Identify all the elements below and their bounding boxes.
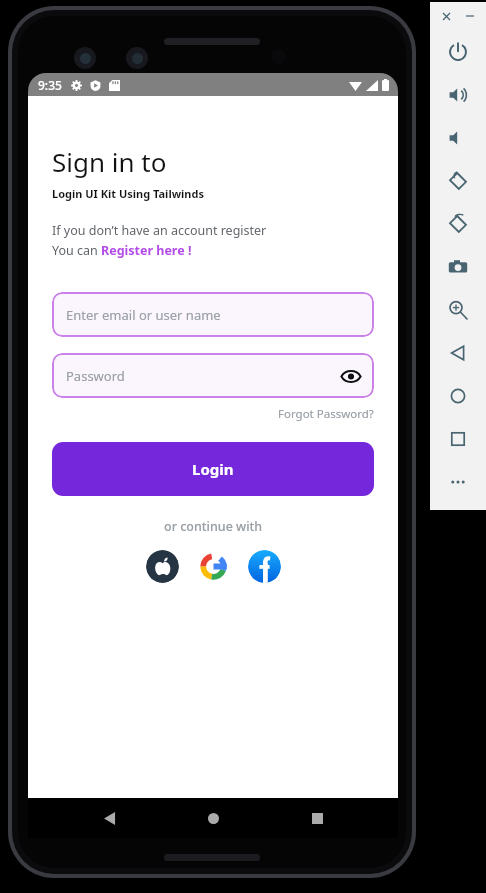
button[interactable]: Recents: [295, 798, 339, 838]
button[interactable]: Power: [430, 30, 486, 73]
button[interactable]: Login: [52, 442, 374, 496]
staticText: You can Register here !: [52, 242, 192, 259]
button[interactable]: You can Register here !: [52, 242, 192, 259]
button[interactable]: Password: [52, 353, 374, 398]
staticText: Login UI Kit Using Tailwinds: [52, 186, 204, 201]
button[interactable]: Zoom: [430, 288, 486, 331]
button[interactable]: Close: [438, 8, 454, 24]
staticText: If you don’t have an account register: [52, 222, 267, 239]
button[interactable]: Forgot Password?: [278, 406, 374, 422]
button[interactable]: Enter email or user name: [52, 292, 374, 337]
staticText: Login: [192, 459, 234, 479]
button[interactable]: Back: [88, 798, 132, 838]
button[interactable]: Back: [430, 331, 486, 374]
staticText: Password: [66, 367, 125, 385]
staticText: or continue with: [164, 518, 263, 535]
button[interactable]: Sign in with Google: [197, 550, 230, 583]
button[interactable]: Sign in with Facebook: [248, 550, 281, 583]
button[interactable]: Show password: [340, 365, 362, 387]
button[interactable]: Rotate right: [430, 202, 486, 245]
button[interactable]: Home: [430, 374, 486, 417]
button[interactable]: Minimize: [462, 8, 478, 24]
button[interactable]: Screenshot: [430, 245, 486, 288]
button[interactable]: Rotate left: [430, 159, 486, 202]
button[interactable]: Volume up: [430, 73, 486, 116]
button[interactable]: Sign in with Apple: [146, 550, 179, 583]
button[interactable]: Recents: [430, 417, 486, 460]
button[interactable]: Volume down: [430, 116, 486, 159]
staticText: 9:35: [38, 77, 62, 93]
staticText: Sign in to: [52, 144, 167, 179]
staticText: Enter email or user name: [66, 306, 221, 324]
button[interactable]: Home: [191, 798, 235, 838]
button[interactable]: More: [430, 460, 486, 503]
